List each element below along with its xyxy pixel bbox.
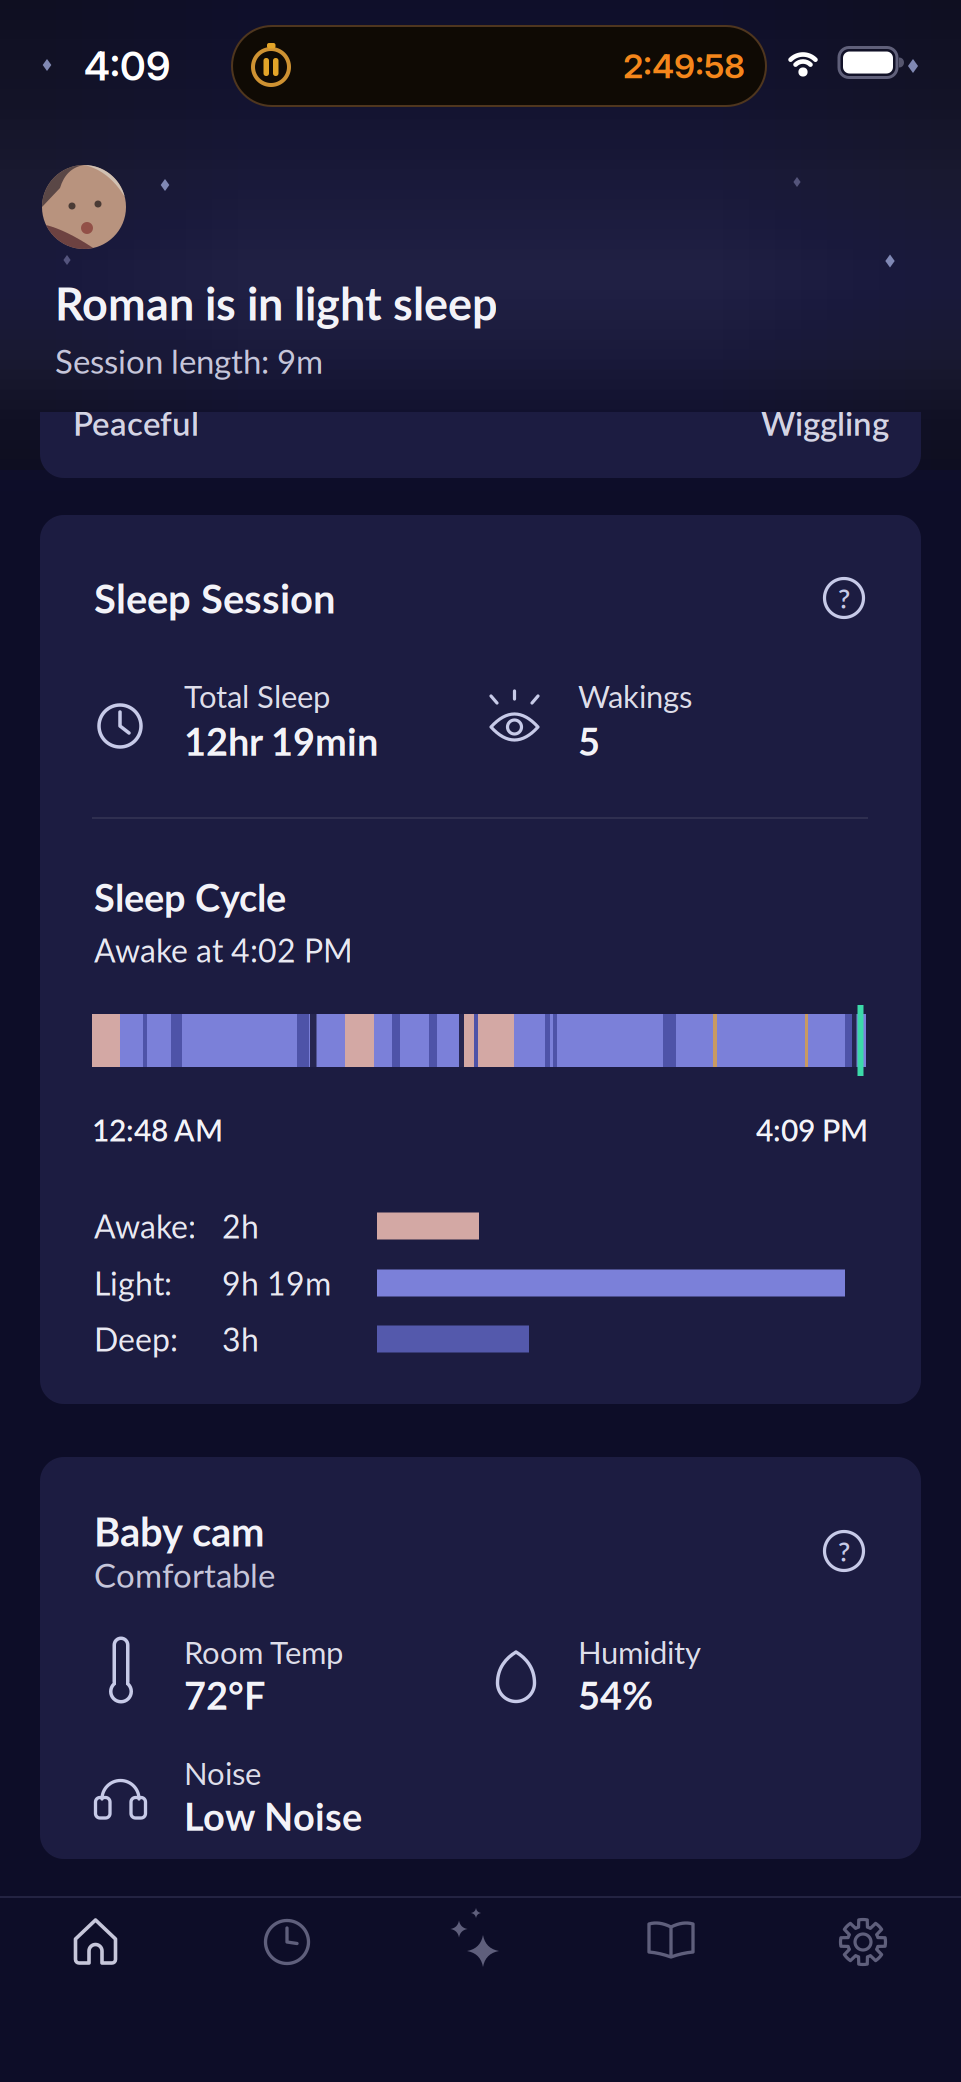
- staticText: Noise: [184, 1754, 261, 1792]
- staticText: Humidity: [578, 1633, 701, 1671]
- staticText: 5: [578, 718, 600, 764]
- staticText: Wakings: [578, 677, 692, 715]
- staticText: Peaceful: [73, 403, 199, 443]
- staticText: Baby cam: [94, 1507, 265, 1555]
- staticText: Awake at 4:02 PM: [94, 931, 353, 969]
- staticText: 12:48 AM: [92, 1112, 223, 1148]
- staticText: Sleep Cycle: [94, 874, 286, 920]
- staticText: ?: [838, 1535, 850, 1567]
- staticText: 2:49:58: [623, 45, 745, 86]
- staticText: 12hr 19min: [184, 718, 378, 764]
- staticText: 9h 19m: [222, 1264, 331, 1302]
- staticText: Total Sleep: [184, 677, 330, 715]
- staticText: 3h: [222, 1320, 259, 1358]
- staticText: 4:09: [84, 42, 170, 90]
- staticText: Sleep Session: [94, 574, 336, 622]
- staticText: Session length: 9m: [55, 341, 323, 381]
- staticText: Low Noise: [184, 1793, 362, 1839]
- staticText: 2h: [222, 1207, 259, 1245]
- staticText: 72°F: [184, 1672, 266, 1718]
- staticText: Room Temp: [184, 1633, 343, 1671]
- staticText: ?: [838, 582, 850, 614]
- staticText: Awake:: [94, 1207, 196, 1245]
- staticText: 54%: [578, 1672, 653, 1718]
- staticText: Comfortable: [94, 1555, 275, 1595]
- staticText: Light:: [94, 1264, 172, 1302]
- staticText: Roman is in light sleep: [55, 276, 498, 330]
- staticText: Wiggling: [761, 403, 889, 443]
- staticText: Deep:: [94, 1320, 178, 1358]
- staticText: 4:09 PM: [756, 1112, 868, 1148]
